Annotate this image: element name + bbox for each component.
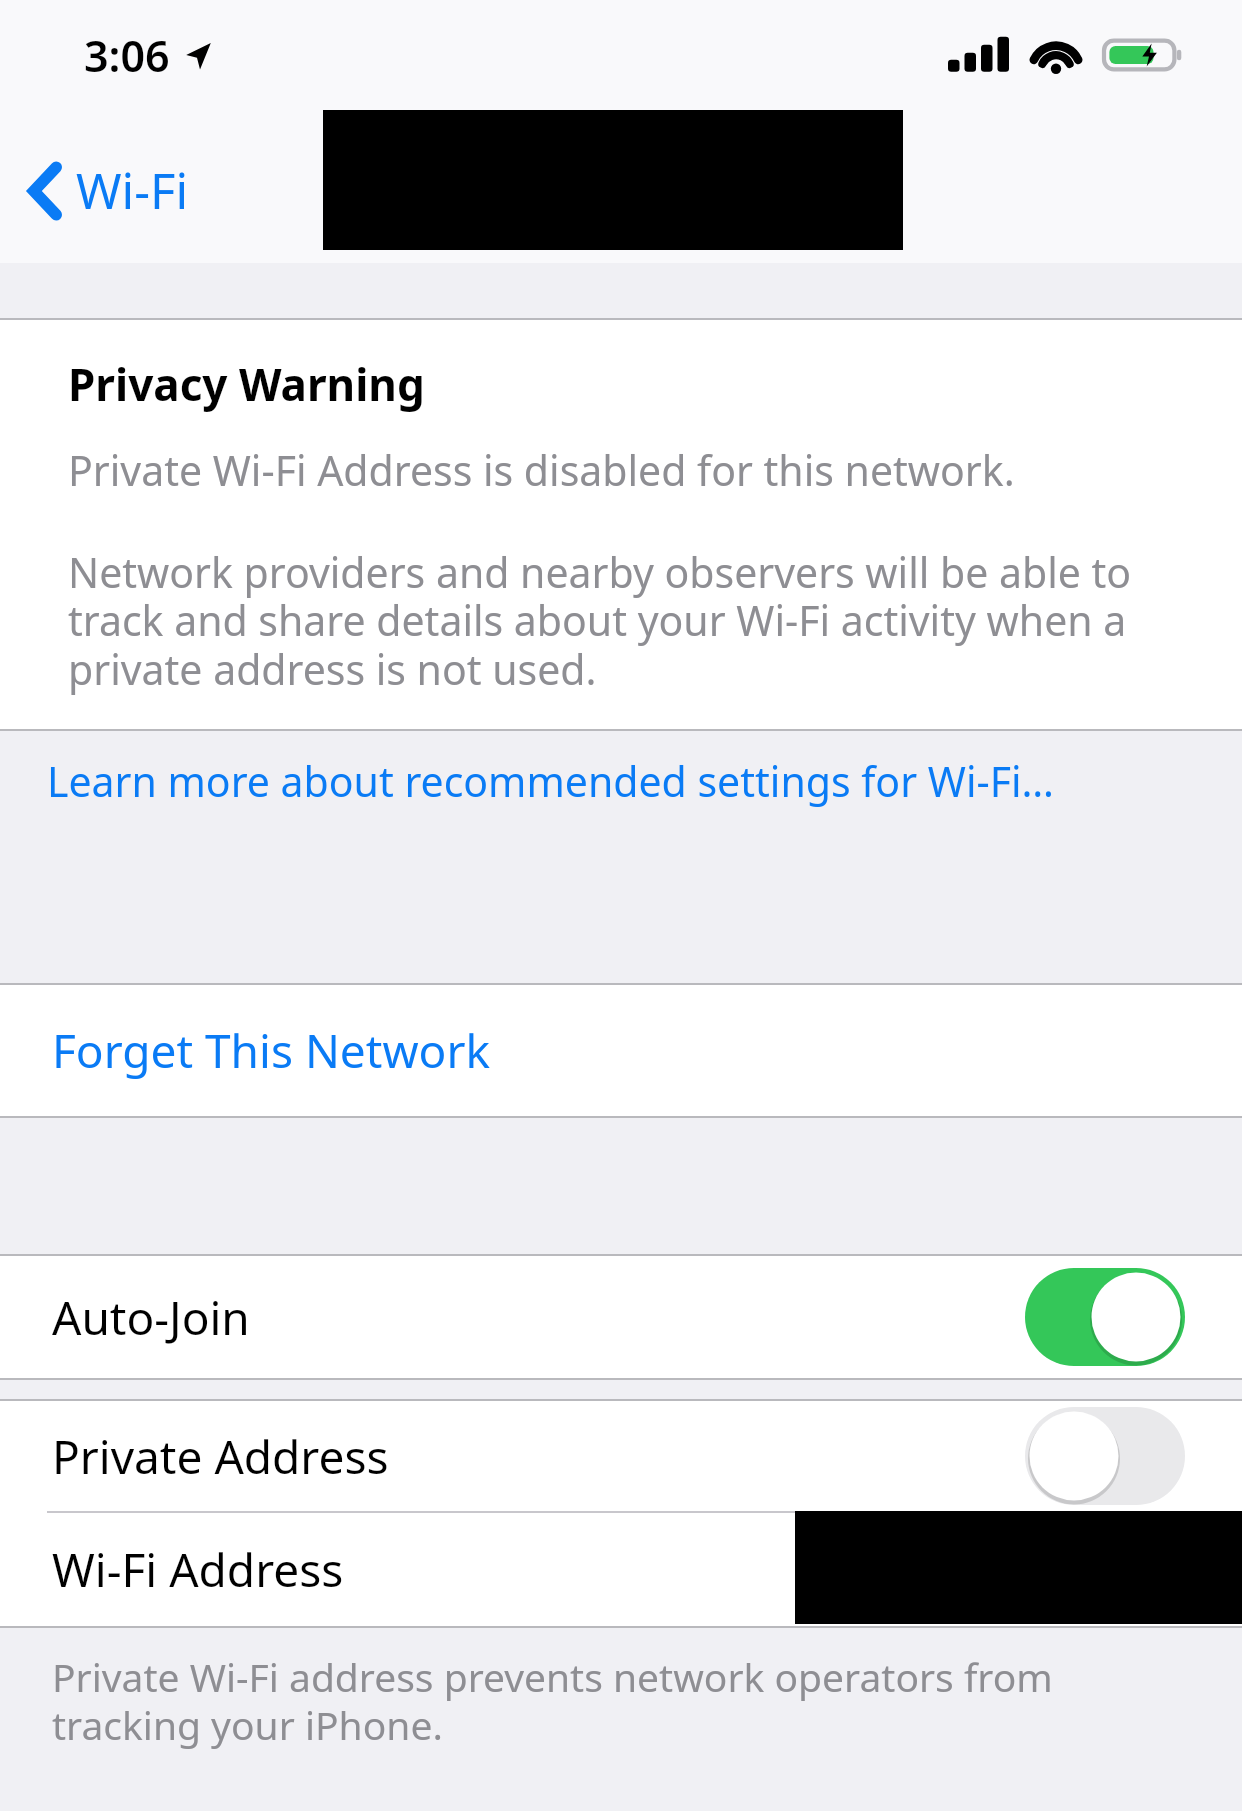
button[interactable]: Learn more about recommended settings fo…	[0, 731, 1242, 983]
staticText: Private Address	[52, 1425, 389, 1488]
staticText: 3:06	[84, 26, 170, 85]
button[interactable]: Auto-Join	[0, 1256, 1242, 1378]
button[interactable]: On	[1025, 1268, 1185, 1366]
button[interactable]: Off	[1025, 1407, 1185, 1505]
button[interactable]: Back to Wi-Fi	[0, 143, 213, 238]
staticText: Network providers and nearby observers w…	[68, 544, 1182, 697]
staticText: Wi-Fi Address	[52, 1538, 344, 1601]
staticText: Learn more about recommended settings fo…	[47, 753, 1054, 809]
staticText: Private Wi-Fi address prevents network o…	[52, 1650, 1162, 1751]
button[interactable]: Forget This Network	[0, 985, 1242, 1116]
staticText: Privacy Warning	[68, 354, 425, 414]
staticText: Private Wi-Fi Address is disabled for th…	[68, 442, 1015, 498]
button[interactable]: Private Address	[0, 1401, 1242, 1511]
staticText: Forget This Network	[52, 1019, 490, 1082]
staticText: Wi-Fi	[76, 157, 189, 224]
staticText: Auto-Join	[52, 1286, 250, 1349]
button[interactable]: Wi-Fi Address	[0, 1513, 1242, 1626]
